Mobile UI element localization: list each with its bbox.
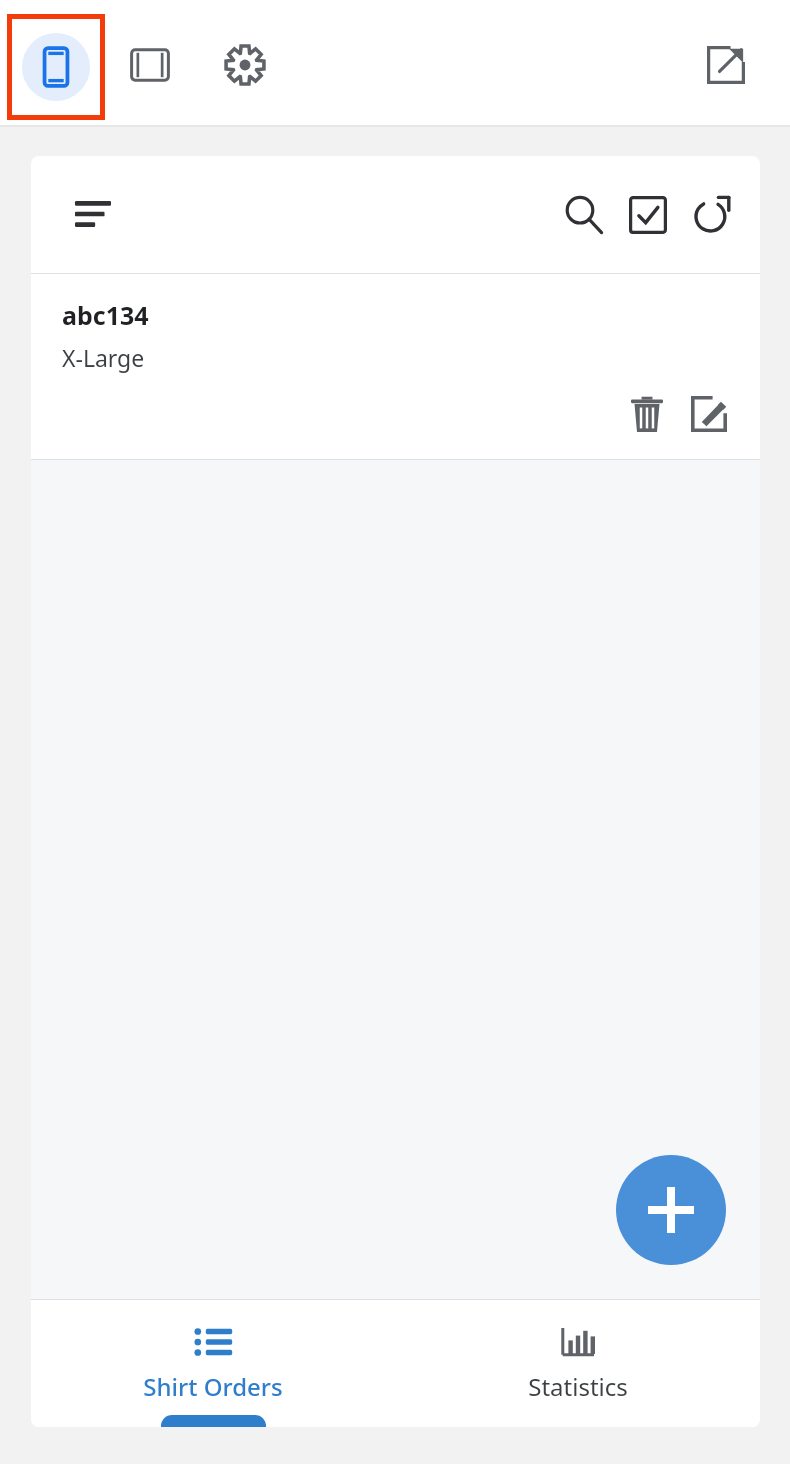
button[interactable]: Edit xyxy=(678,383,740,445)
staticText: Statistics xyxy=(528,1370,628,1403)
button[interactable]: Phone preview xyxy=(7,14,105,120)
button[interactable]: Select all xyxy=(616,183,680,247)
button[interactable]: Tablet preview xyxy=(113,28,187,102)
button[interactable]: Sort xyxy=(69,190,117,238)
staticText: Shirt Orders xyxy=(143,1370,283,1403)
button[interactable]: abc134 xyxy=(31,274,760,459)
staticText: X-Large xyxy=(62,342,145,373)
button[interactable]: Add order xyxy=(616,1155,726,1265)
button[interactable]: Shirt Orders xyxy=(31,1300,395,1427)
button[interactable]: Search xyxy=(552,183,616,247)
button[interactable]: Open in new window xyxy=(689,28,763,102)
button[interactable]: Statistics xyxy=(395,1300,760,1427)
button[interactable]: Settings xyxy=(208,28,282,102)
button[interactable]: Refresh xyxy=(680,183,744,247)
button[interactable]: Delete xyxy=(616,383,678,445)
staticText: abc134 xyxy=(62,298,149,332)
